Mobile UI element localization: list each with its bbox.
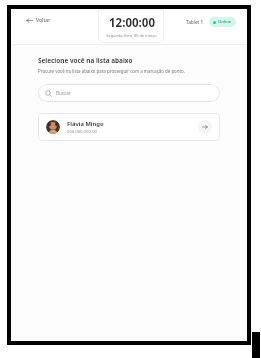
staticText: Procure você na lista abaixo para prosse… [38,68,185,74]
staticText: Online [218,19,232,25]
staticText: 000.000.000-00 [67,129,97,135]
staticText: Buscar [56,90,71,96]
staticText: Tablet 1 [186,19,204,25]
staticText: Flávia Mingo [67,120,104,128]
button[interactable]: Voltar [24,16,53,25]
button[interactable]: Flávia Mingo [38,113,220,141]
button[interactable]: Selecionar Flávia Mingo [198,120,212,134]
button[interactable]: Online [209,17,236,27]
staticText: 12:00:00 [109,15,155,31]
button[interactable]: Buscar [38,84,220,102]
staticText: Voltar [36,17,51,24]
staticText: Segunda-feira, 06 de março [106,33,157,38]
staticText: Selecione você na lista abaixo [38,56,133,65]
